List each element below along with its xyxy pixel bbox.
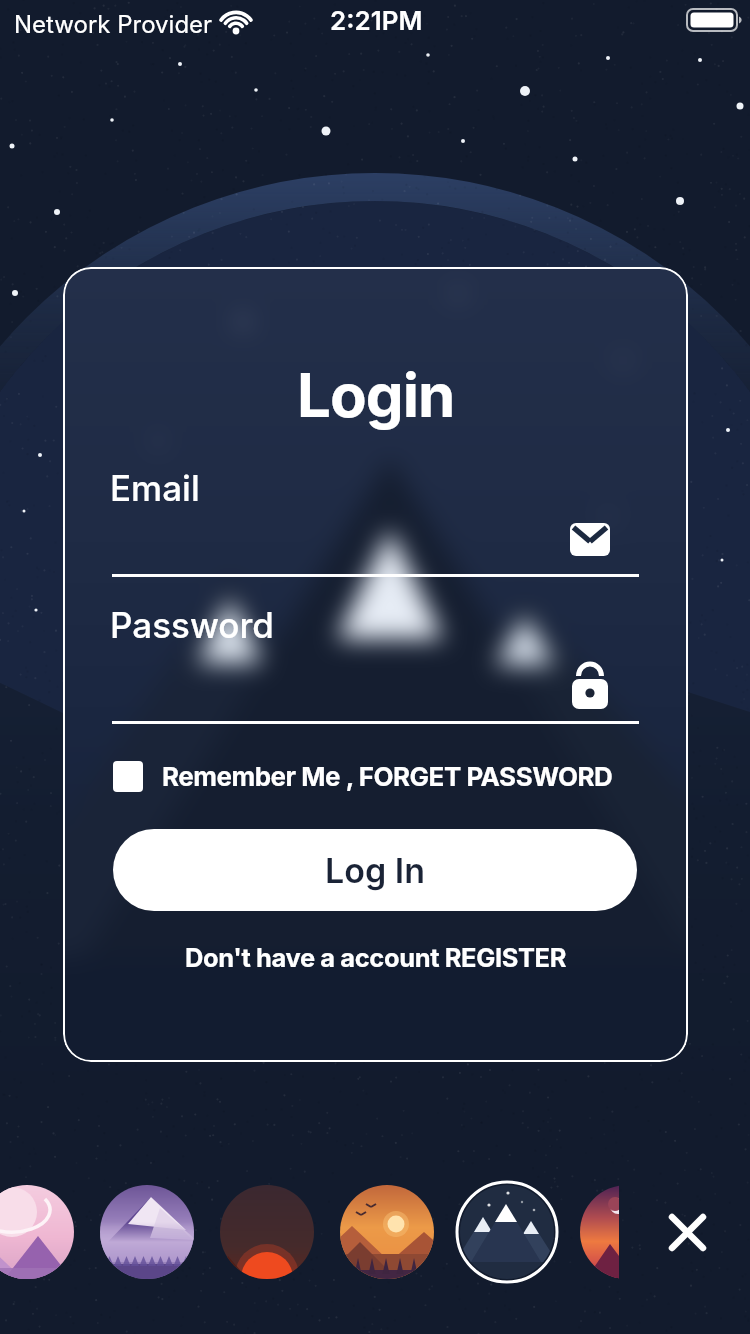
- button[interactable]: Log In: [113, 829, 637, 911]
- button[interactable]: [662, 1207, 712, 1257]
- staticText: Network Provider: [14, 10, 213, 39]
- button[interactable]: [220, 1185, 314, 1279]
- staticText: Email: [110, 467, 200, 509]
- button[interactable]: [112, 510, 639, 577]
- staticText: Remember Me , FORGET PASSWORD: [162, 761, 613, 792]
- staticText: Log In: [325, 850, 425, 891]
- button[interactable]: [460, 1185, 554, 1279]
- button[interactable]: [340, 1185, 434, 1279]
- button[interactable]: Don't have a account REGISTER: [185, 942, 567, 973]
- button[interactable]: Remember Me , FORGET PASSWORD: [113, 761, 613, 792]
- button[interactable]: [112, 657, 639, 724]
- button[interactable]: [0, 1185, 74, 1279]
- button[interactable]: [100, 1185, 194, 1279]
- button[interactable]: [580, 1185, 674, 1279]
- staticText: Login: [297, 359, 455, 432]
- staticText: 2:21PM: [330, 5, 423, 36]
- staticText: Password: [110, 604, 274, 646]
